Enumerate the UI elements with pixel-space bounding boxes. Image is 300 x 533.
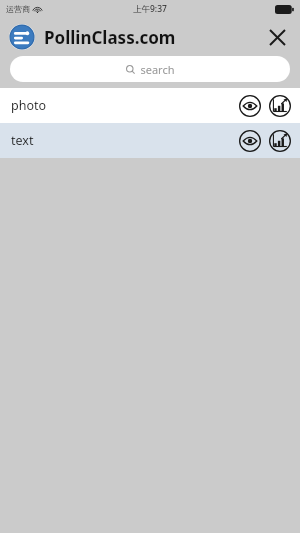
- staticText: 运营商: [6, 4, 30, 14]
- button[interactable]: Preview: [236, 92, 264, 120]
- staticText: text: [11, 132, 34, 149]
- staticText: photo: [11, 97, 47, 114]
- button[interactable]: text: [0, 123, 300, 158]
- staticText: 上午9:37: [133, 3, 167, 15]
- button[interactable]: search: [10, 56, 290, 82]
- button[interactable]: Preview: [236, 127, 264, 155]
- button[interactable]: Statistics: [266, 127, 294, 155]
- button[interactable]: Statistics: [266, 92, 294, 120]
- button[interactable]: photo: [0, 88, 300, 123]
- button[interactable]: Close: [258, 18, 296, 56]
- staticText: PollinClass.com: [44, 26, 176, 49]
- staticText: search: [140, 62, 175, 77]
